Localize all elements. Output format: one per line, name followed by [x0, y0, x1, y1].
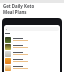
button[interactable] — [5, 50, 59, 57]
button[interactable] — [5, 57, 59, 64]
button[interactable] — [5, 36, 59, 43]
button[interactable] — [5, 64, 59, 71]
staticText: Get Daily Keto — [3, 3, 35, 9]
staticText: Meal Plans — [3, 9, 27, 15]
button[interactable] — [5, 43, 59, 50]
button[interactable] — [5, 27, 59, 31]
